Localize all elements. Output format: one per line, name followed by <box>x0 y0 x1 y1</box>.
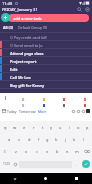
button[interactable]: Emoji <box>12 157 18 171</box>
staticText: t <box>42 125 44 130</box>
button[interactable]: Settings <box>84 6 90 12</box>
staticText: l <box>83 137 85 142</box>
staticText: Send email to Jo <box>14 43 43 48</box>
button[interactable]: j <box>61 133 70 145</box>
button[interactable]: i <box>65 121 74 133</box>
button[interactable]: Pay credit card bill <box>0 33 92 41</box>
staticText: g <box>46 137 49 142</box>
button[interactable]: z <box>10 145 21 157</box>
staticText: 11:48 <box>2 1 13 6</box>
staticText: ⌫ <box>84 149 90 154</box>
staticText: i <box>69 125 71 130</box>
staticText: ?123 <box>3 162 10 166</box>
button[interactable]: h <box>52 133 61 145</box>
staticText: h <box>55 137 58 142</box>
button[interactable]: e <box>20 121 29 133</box>
staticText: Project report <box>10 59 37 64</box>
staticText: Buy gift for Kenny <box>10 83 45 88</box>
staticText: r <box>33 125 35 130</box>
button[interactable]: n <box>62 145 72 157</box>
button[interactable]: Buy gift for Kenny <box>0 81 92 89</box>
button[interactable]: s <box>14 133 24 145</box>
staticText: m <box>75 149 79 154</box>
staticText: u <box>59 125 62 130</box>
staticText: All (3) <box>3 25 14 30</box>
staticText: a <box>8 137 11 142</box>
staticText: ⇧ <box>3 149 7 154</box>
staticText: Edit <box>10 67 18 72</box>
button[interactable]: Call Mr Lee <box>0 73 92 81</box>
button[interactable]: o <box>74 121 83 133</box>
staticText: y <box>50 125 53 130</box>
button[interactable]: ⌫ <box>82 145 92 157</box>
button[interactable]: Back <box>0 173 30 184</box>
button[interactable]: a <box>4 133 14 145</box>
button[interactable]: add a new task <box>8 14 89 22</box>
button[interactable]: t <box>38 121 47 133</box>
button[interactable]: d <box>24 133 34 145</box>
staticText: z <box>15 149 17 154</box>
staticText: Today <box>7 109 17 114</box>
button[interactable]: p <box>83 121 92 133</box>
staticText: d <box>28 137 31 142</box>
button[interactable]: w <box>10 121 20 133</box>
staticText: p <box>86 125 89 130</box>
button[interactable]: Keyboard <box>86 109 90 113</box>
button[interactable]: Home <box>30 173 61 184</box>
button[interactable]: Project report <box>0 57 92 65</box>
button[interactable]: x <box>21 145 32 157</box>
button[interactable]: Option <box>81 109 86 114</box>
staticText: e <box>23 125 26 130</box>
button[interactable]: Add task <box>1 13 10 22</box>
staticText: j <box>65 137 67 142</box>
button[interactable]: Search <box>76 6 82 12</box>
staticText: Default Group (9) <box>18 25 48 30</box>
button[interactable]: Recents <box>61 173 92 184</box>
button[interactable]: ⇧ <box>0 145 10 157</box>
staticText: Call Mr Lee <box>10 75 31 80</box>
staticText: w <box>13 125 17 130</box>
staticText: Tomorrow <box>19 109 36 114</box>
button[interactable]: f <box>34 133 43 145</box>
button[interactable]: Option <box>76 109 81 114</box>
staticText: Attend yoga class <box>10 51 44 56</box>
button[interactable]: q <box>0 121 10 133</box>
button[interactable]: m <box>72 145 82 157</box>
button[interactable]: g <box>43 133 52 145</box>
button[interactable]: All (3) <box>0 23 16 32</box>
button[interactable]: ?123 <box>1 157 12 171</box>
button[interactable]: c <box>32 145 42 157</box>
staticText: Pay credit card bill <box>14 35 47 40</box>
staticText: FRIDAY, January 31 <box>2 7 38 12</box>
staticText: x <box>25 149 28 154</box>
staticText: v <box>46 149 49 154</box>
staticText: More <box>38 109 47 114</box>
button[interactable]: r <box>29 121 38 133</box>
staticText: o <box>77 125 80 130</box>
button[interactable]: y <box>47 121 56 133</box>
button[interactable]: Attend yoga class <box>0 49 92 57</box>
button[interactable]: k <box>70 133 79 145</box>
staticText: f <box>38 137 40 142</box>
staticText: b <box>56 149 59 154</box>
button[interactable]: l <box>79 133 88 145</box>
button[interactable]: Send email to Jo <box>0 41 92 49</box>
staticText: s <box>18 137 20 142</box>
staticText: n <box>66 149 69 154</box>
staticText: q <box>4 125 7 130</box>
button[interactable]: Option <box>71 109 76 114</box>
button[interactable]: u <box>56 121 65 133</box>
button[interactable]: v <box>42 145 52 157</box>
button[interactable]: Enter <box>80 157 91 171</box>
staticText: . <box>76 162 78 167</box>
staticText: k <box>73 137 76 142</box>
button[interactable]: b <box>52 145 62 157</box>
button[interactable]: Default Group (9) <box>16 23 50 32</box>
staticText: add a new task <box>13 16 42 21</box>
button[interactable]: Edit <box>0 65 92 73</box>
staticText: c <box>36 149 38 154</box>
